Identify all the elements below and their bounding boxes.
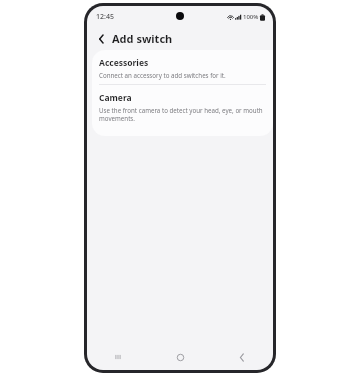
staticText: Add switch	[112, 31, 173, 46]
staticText: Connect an accessory to add switches for…	[99, 71, 226, 79]
staticText: Accessories	[99, 57, 149, 69]
button[interactable]: Home	[149, 344, 211, 370]
staticText: 12:45	[96, 12, 114, 22]
staticText: Use the front camera to detect your head…	[99, 106, 264, 123]
button[interactable]: Camera	[92, 85, 273, 128]
button[interactable]: Back	[94, 31, 109, 46]
button[interactable]: Accessories	[92, 50, 273, 84]
staticText: 100%	[243, 13, 259, 21]
button[interactable]: Recent apps	[87, 344, 149, 370]
button[interactable]: Back	[211, 344, 273, 370]
staticText: Camera	[99, 92, 132, 104]
